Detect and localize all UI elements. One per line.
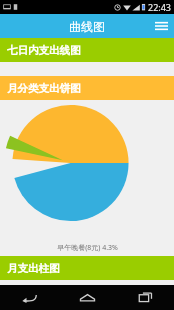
button[interactable]: Menu [148, 14, 174, 38]
button[interactable]: 月支出柱图 [0, 256, 174, 280]
staticText: 22:43 [148, 1, 172, 13]
button[interactable]: 月分类支出饼图 [0, 76, 174, 100]
staticText: 月支出柱图 [7, 262, 60, 275]
button[interactable]: Back [0, 285, 58, 310]
staticText: 早午晚餐(8元) 4.3% [57, 243, 118, 253]
staticText: 七日内支出线图 [7, 44, 81, 57]
button[interactable]: 七日内支出线图 [0, 38, 174, 62]
staticText: 月分类支出饼图 [7, 82, 81, 95]
button[interactable]: Home [58, 285, 116, 310]
button[interactable]: Recent apps [116, 285, 174, 310]
staticText: 曲线图 [69, 19, 105, 34]
